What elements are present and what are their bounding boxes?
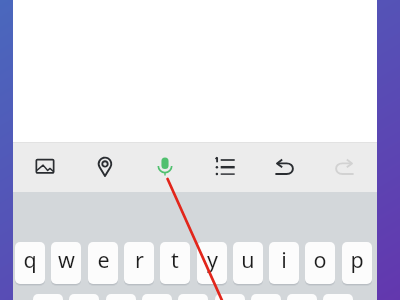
button[interactable]: Redo <box>319 143 368 192</box>
button[interactable]: i <box>269 242 299 284</box>
staticText: o <box>313 245 327 274</box>
button[interactable]: Location <box>80 143 129 192</box>
button[interactable]: e <box>88 242 118 284</box>
button[interactable]: q <box>15 242 45 284</box>
staticText: e <box>97 245 110 274</box>
button[interactable]: k <box>287 294 317 300</box>
staticText: t <box>171 245 179 274</box>
button[interactable]: l <box>323 294 353 300</box>
staticText: u <box>241 245 255 274</box>
button[interactable]: Voice input <box>140 143 189 192</box>
staticText: i <box>281 245 287 274</box>
button[interactable]: Undo <box>260 143 309 192</box>
button[interactable]: s <box>69 294 99 300</box>
button[interactable]: f <box>142 294 172 300</box>
button[interactable]: j <box>251 294 281 300</box>
button[interactable]: Insert image <box>20 143 69 192</box>
staticText: q <box>23 245 37 274</box>
button[interactable]: p <box>342 242 372 284</box>
button[interactable]: g <box>178 294 208 300</box>
button[interactable]: d <box>106 294 136 300</box>
staticText: w <box>58 245 75 274</box>
staticText: h <box>223 297 237 300</box>
button[interactable]: y <box>197 242 227 284</box>
button[interactable]: u <box>233 242 263 284</box>
button[interactable]: o <box>305 242 335 284</box>
staticText: p <box>350 245 364 274</box>
button[interactable]: t <box>160 242 190 284</box>
button[interactable]: a <box>33 294 63 300</box>
staticText: r <box>135 245 144 274</box>
button[interactable]: r <box>124 242 154 284</box>
button[interactable]: h <box>215 294 245 300</box>
staticText: y <box>207 245 218 274</box>
button[interactable]: w <box>51 242 81 284</box>
button[interactable]: Bulleted list <box>200 143 249 192</box>
